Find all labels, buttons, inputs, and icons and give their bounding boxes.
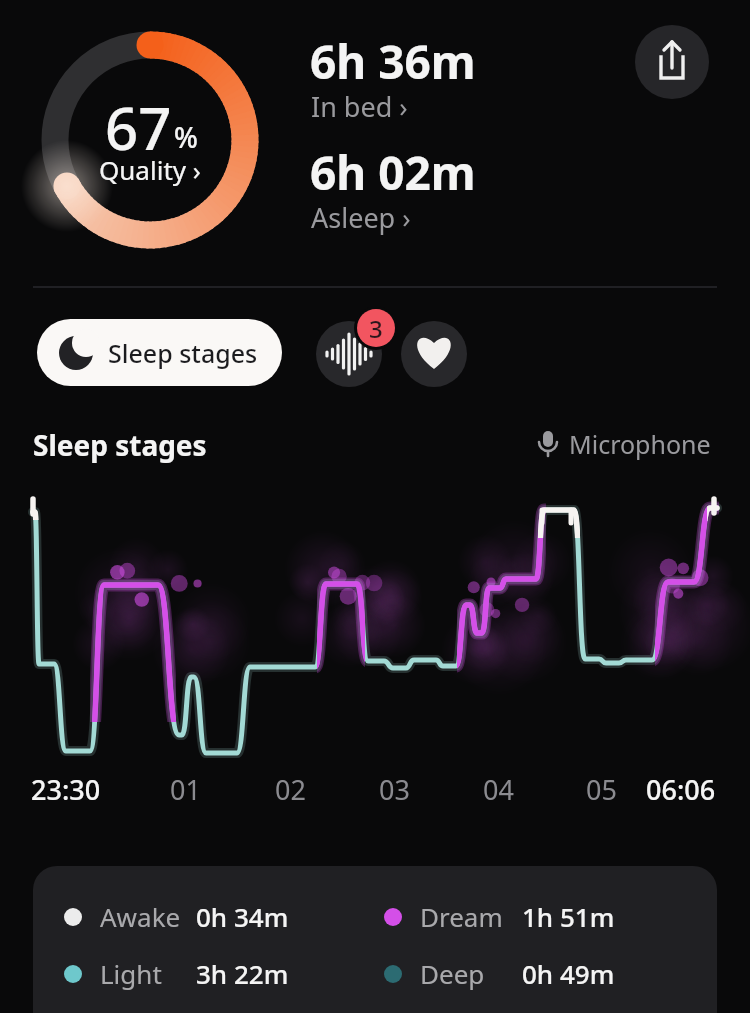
staticText: Dream: [420, 899, 503, 934]
button[interactable]: Sleep stages: [37, 319, 282, 386]
staticText: 6h 02m: [310, 141, 476, 204]
staticText: 3h 22m: [196, 956, 289, 991]
staticText: Quality ›: [99, 152, 201, 187]
staticText: 0h 34m: [196, 899, 289, 934]
staticText: Microphone: [569, 427, 711, 461]
button[interactable]: Quality ›: [55, 152, 245, 187]
staticText: 0h 49m: [522, 956, 615, 991]
staticText: 1h 51m: [522, 899, 615, 934]
staticText: Deep: [420, 956, 485, 991]
staticText: 06:06: [646, 771, 716, 808]
button[interactable]: [635, 25, 709, 99]
staticText: Awake: [100, 899, 181, 934]
staticText: 23:30: [31, 771, 101, 808]
staticText: 3: [369, 312, 383, 345]
staticText: 05: [586, 771, 617, 808]
button[interactable]: Microphone: [533, 427, 711, 461]
staticText: 6h 36m: [310, 30, 476, 93]
button[interactable]: [316, 321, 382, 387]
staticText: 02: [275, 771, 306, 808]
button[interactable]: [401, 321, 467, 387]
staticText: 03: [379, 771, 410, 808]
staticText: 67: [105, 88, 172, 167]
staticText: 04: [483, 771, 514, 808]
staticText: Sleep stages: [108, 336, 258, 370]
staticText: Light: [100, 956, 162, 991]
staticText: 01: [170, 771, 201, 808]
staticText: %: [174, 118, 198, 156]
staticText: Sleep stages: [33, 426, 207, 464]
